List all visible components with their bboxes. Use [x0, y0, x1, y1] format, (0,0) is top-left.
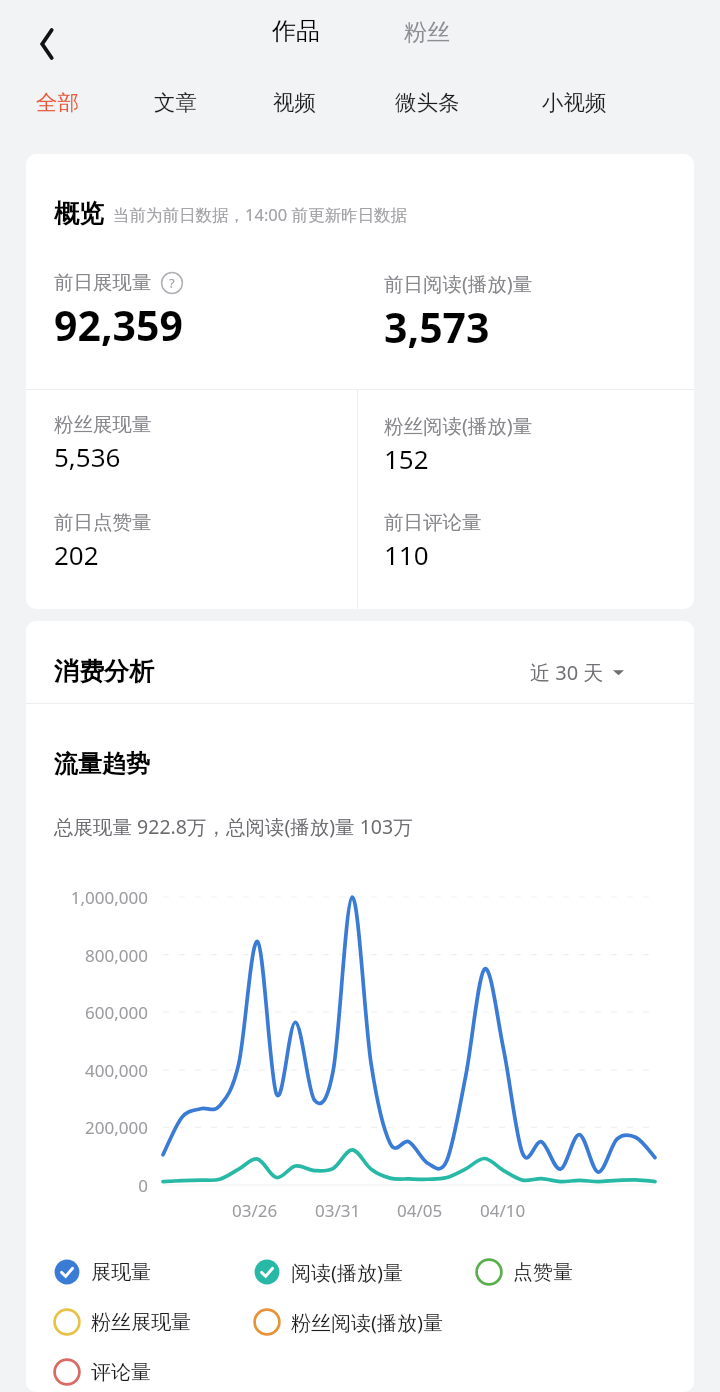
- staticText: 04/10: [480, 1199, 526, 1222]
- staticText: 文章: [154, 89, 197, 116]
- staticText: 作品: [272, 16, 320, 46]
- button[interactable]: 展现量: [53, 1250, 151, 1294]
- staticText: 110: [384, 537, 429, 572]
- staticText: 视频: [273, 89, 316, 116]
- button[interactable]: 微头条: [367, 80, 487, 124]
- staticText: 微头条: [395, 89, 460, 116]
- staticText: ?: [169, 274, 175, 292]
- button[interactable]: 作品: [236, 9, 356, 53]
- staticText: 0: [138, 1174, 148, 1197]
- staticText: 消费分析: [54, 656, 154, 687]
- button[interactable]: 文章: [115, 80, 235, 124]
- staticText: 粉丝展现量: [54, 412, 152, 437]
- staticText: 展现量: [91, 1260, 151, 1285]
- staticText: 前日展现量: [54, 270, 152, 295]
- staticText: 阅读(播放)量: [291, 1259, 403, 1286]
- staticText: 152: [384, 441, 429, 476]
- staticText: 03/26: [232, 1199, 278, 1222]
- staticText: 粉丝阅读(播放)量: [291, 1309, 443, 1336]
- button[interactable]: 粉丝阅读(播放)量: [253, 1300, 443, 1344]
- staticText: 评论量: [91, 1360, 151, 1385]
- button[interactable]: 阅读(播放)量: [253, 1250, 403, 1294]
- button[interactable]: 粉丝: [367, 10, 487, 54]
- staticText: 92,359: [54, 297, 183, 353]
- button[interactable]: 点赞量: [475, 1250, 573, 1294]
- staticText: 400,000: [85, 1059, 148, 1082]
- staticText: 小视频: [542, 89, 607, 116]
- staticText: 前日阅读(播放)量: [384, 270, 533, 297]
- staticText: 全部: [36, 89, 79, 116]
- staticText: 前日评论量: [384, 510, 482, 535]
- staticText: 粉丝阅读(播放)量: [384, 412, 533, 439]
- staticText: 粉丝: [404, 18, 450, 47]
- button[interactable]: 近 30 天: [530, 651, 624, 693]
- button[interactable]: 粉丝展现量: [53, 1300, 191, 1344]
- staticText: 800,000: [85, 944, 148, 967]
- staticText: 3,573: [384, 299, 490, 355]
- staticText: 前日点赞量: [54, 510, 152, 535]
- staticText: 总展现量 922.8万，总阅读(播放)量 103万: [54, 813, 413, 840]
- staticText: 1,000,000: [70, 886, 148, 909]
- staticText: 600,000: [85, 1001, 148, 1024]
- button[interactable]: 小视频: [514, 80, 634, 124]
- staticText: 202: [54, 537, 99, 572]
- staticText: 当前为前日数据，14:00 前更新昨日数据: [113, 203, 407, 226]
- button[interactable]: 指标说明: [160, 271, 184, 295]
- staticText: 5,536: [54, 439, 121, 474]
- staticText: 200,000: [85, 1116, 148, 1139]
- staticText: 03/31: [315, 1199, 361, 1222]
- staticText: 粉丝展现量: [91, 1310, 191, 1335]
- staticText: 近 30 天: [530, 659, 604, 686]
- staticText: 概览: [54, 198, 104, 229]
- staticText: 流量趋势: [54, 749, 150, 779]
- button[interactable]: 评论量: [53, 1350, 151, 1392]
- staticText: 点赞量: [513, 1260, 573, 1285]
- button[interactable]: Back: [22, 20, 70, 68]
- button[interactable]: 全部: [0, 80, 117, 124]
- button[interactable]: 视频: [234, 80, 354, 124]
- staticText: 04/05: [397, 1199, 443, 1222]
